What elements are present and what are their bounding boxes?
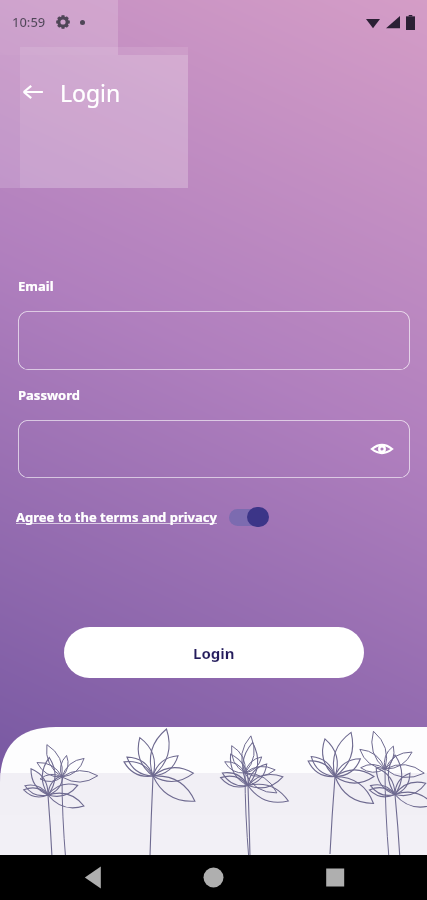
button[interactable]: Login [64, 627, 364, 678]
staticText: Agree to the terms and privacy [16, 508, 221, 526]
staticText: Password [18, 386, 80, 404]
button[interactable]: Show password [364, 431, 400, 467]
button[interactable] [18, 311, 410, 370]
button[interactable] [18, 420, 410, 478]
button[interactable]: Back [16, 75, 50, 109]
staticText: Login [193, 643, 235, 663]
staticText: Email [18, 277, 54, 295]
button[interactable]: Agree to the terms and privacy [16, 500, 269, 534]
staticText: 10:59 [12, 13, 46, 31]
staticText: Login [60, 77, 121, 108]
